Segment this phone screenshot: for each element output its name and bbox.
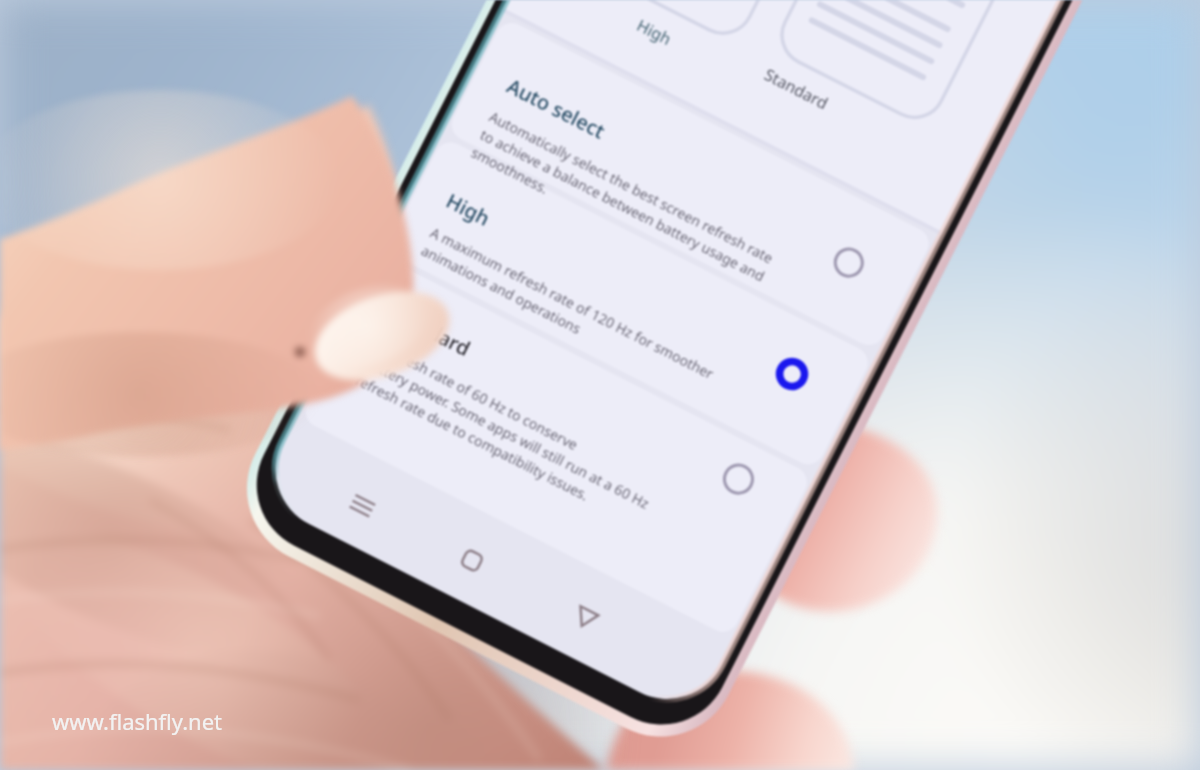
button[interactable]: Display refresh rate settings on phone <box>0 0 1200 770</box>
